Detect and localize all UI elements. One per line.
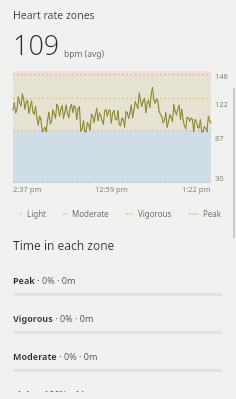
button[interactable]: Peak [189,208,222,219]
button[interactable]: Light [20,208,47,219]
staticText: · 0% · 0m [57,350,98,362]
staticText: · 0% · 0m [53,312,94,324]
staticText: Moderate [72,208,109,219]
staticText: 1:22 pm [182,184,211,194]
staticText: · 100% · 44m [37,388,93,392]
button[interactable]: Vigorous [0,303,236,341]
staticText: Peak [203,208,222,219]
staticText: Vigorous [13,312,53,324]
staticText: bpm (avg) [64,48,105,60]
staticText: 12:59 pm [95,184,128,194]
staticText: 2:37 pm [13,184,42,194]
staticText: 122 [215,99,228,109]
staticText: Peak [13,274,35,286]
staticText: 87 [215,133,224,143]
button[interactable]: Moderate [63,208,109,219]
staticText: Light [13,388,37,392]
staticText: Moderate [13,350,57,362]
button[interactable]: Moderate [0,341,236,379]
staticText: Time in each zone [13,237,115,253]
button[interactable]: Peak [0,265,236,303]
staticText: 30 [215,173,224,183]
staticText: Vigorous [138,208,172,219]
staticText: Light [27,208,47,219]
staticText: 148 [215,71,228,81]
staticText: Heart rate zones [13,8,95,22]
staticText: · 0% · 0m [35,274,76,286]
button[interactable]: Light [0,379,236,399]
staticText: 109 [13,26,60,63]
button[interactable]: Vigorous [126,208,172,219]
